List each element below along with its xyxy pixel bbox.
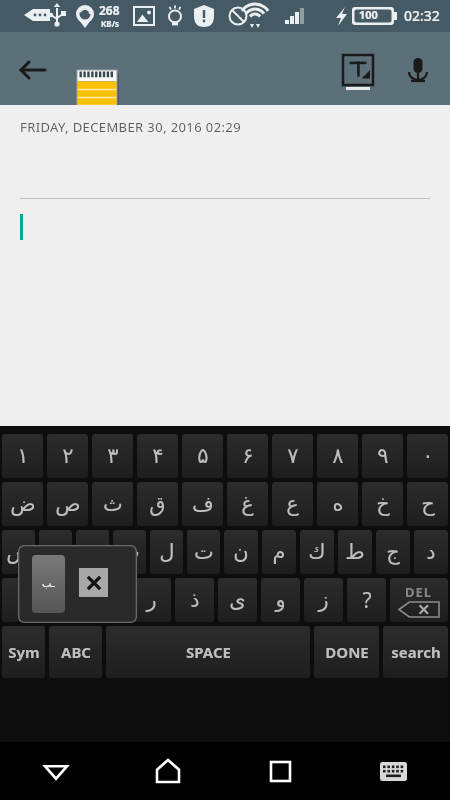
button[interactable]: ٩ [362,434,403,478]
button[interactable]: ل [150,530,183,574]
button[interactable]: ٢ [47,434,88,478]
staticText: و [275,588,286,612]
staticText: ذ [190,588,200,612]
button[interactable]: خ [362,482,403,526]
staticText: ? [362,586,372,615]
staticText: 100 [359,7,378,22]
button[interactable]: SPACE [106,626,310,678]
button[interactable]: Sym [2,626,45,678]
button[interactable]: ت [187,530,220,574]
staticText: ١ [17,444,29,468]
button[interactable]: ب [113,530,146,574]
button[interactable]: ۴ [137,434,178,478]
button[interactable]: ۵ [182,434,223,478]
staticText: م [272,540,286,564]
button[interactable]: ح [407,482,448,526]
button[interactable]: ـب [32,555,65,613]
button[interactable]: ش [2,530,35,574]
staticText: ج [386,540,400,564]
staticText: ٩ [377,444,389,468]
staticText: ۶ [242,444,254,468]
button[interactable]: ABC [49,626,102,678]
staticText: ح [421,492,435,516]
staticText: غ [241,492,254,516]
staticText: ۵ [197,444,209,468]
button[interactable]: ف [182,482,223,526]
staticText: 268 [99,2,120,18]
staticText: SPACE [186,642,231,662]
staticText: ـب [42,578,55,590]
button[interactable]: ر [132,578,171,622]
button[interactable]: ق [137,482,178,526]
staticText: ص [55,492,81,516]
button[interactable]: ـب [18,545,137,623]
button[interactable]: ش [89,578,128,622]
button[interactable]: Home [112,742,224,800]
staticText: search [391,642,441,662]
button[interactable]: د [414,530,448,574]
staticText: ش [96,588,122,612]
button[interactable]: ه [317,482,358,526]
staticText: ف [192,492,214,516]
staticText: ي [84,540,101,564]
button[interactable]: ? [347,578,386,622]
button[interactable]: و [261,578,300,622]
button[interactable]: ج [376,530,410,574]
button[interactable]: ض [2,482,43,526]
button[interactable]: Text format [336,48,380,92]
button[interactable]: غ [227,482,268,526]
button[interactable]: ١ [2,434,43,478]
button[interactable]: ث [92,482,133,526]
button[interactable]: . [2,578,42,622]
staticText: ش [6,540,32,564]
staticText: ۴ [152,444,164,468]
button[interactable]: ز [304,578,343,622]
button[interactable]: ٣ [92,434,133,478]
button[interactable]: س [46,578,85,622]
button[interactable]: Back [0,742,112,800]
staticText: . [19,586,25,615]
button[interactable]: ٠ [407,434,448,478]
staticText: ٠ [422,444,434,468]
button[interactable]: ٧ [272,434,313,478]
button[interactable]: ي [76,530,109,574]
staticText: Sym [8,642,40,662]
button[interactable]: ط [338,530,372,574]
staticText: DEL [405,583,433,601]
button[interactable]: Close [79,568,108,597]
button[interactable]: DONE [314,626,379,678]
button[interactable]: ن [224,530,258,574]
button[interactable]: ٨ [317,434,358,478]
staticText: ز [318,588,329,612]
button[interactable]: Recent apps [224,742,337,800]
button[interactable]: س [39,530,72,574]
staticText: ر [146,588,157,612]
staticText: ض [10,492,36,516]
staticText: FRIDAY, DECEMBER 30, 2016 02:29 [20,118,242,136]
button[interactable]: Back [10,48,54,92]
button[interactable]: ذ [175,578,214,622]
staticText: DONE [325,642,369,662]
staticText: KB/s [101,18,119,29]
staticText: خ [376,492,390,516]
button[interactable]: search [383,626,448,678]
button[interactable]: ص [47,482,88,526]
staticText: ك [308,540,326,564]
button[interactable]: ع [272,482,313,526]
button[interactable]: Voice input [396,48,440,92]
staticText: 02:32 [404,6,440,25]
staticText: ل [159,540,175,564]
button[interactable]: Delete [390,578,448,622]
staticText: ٨ [332,444,344,468]
button[interactable]: ك [300,530,334,574]
staticText: س [53,588,79,612]
staticText: ن [233,540,249,564]
button[interactable]: م [262,530,296,574]
button[interactable]: ى [218,578,257,622]
button[interactable]: Switch keyboard [337,742,450,800]
staticText: ٧ [287,444,299,468]
staticText: ت [194,540,214,564]
staticText: س [43,540,69,564]
button[interactable]: ۶ [227,434,268,478]
staticText: د [426,540,436,564]
